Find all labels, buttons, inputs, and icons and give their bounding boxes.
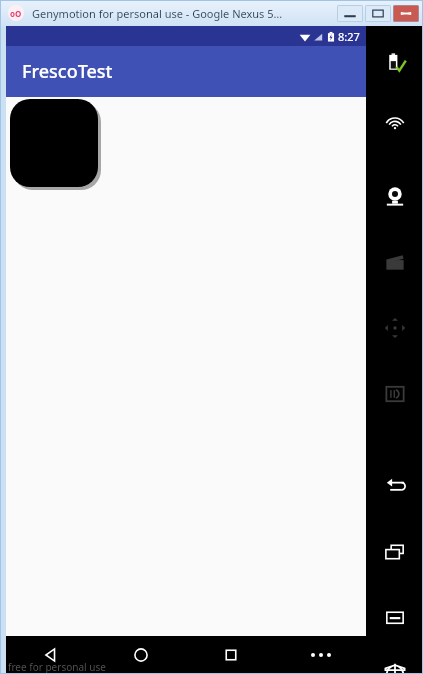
button[interactable]: Minimize: [337, 5, 363, 22]
button[interactable]: Identifiers: [373, 372, 417, 416]
button[interactable]: Home: [96, 636, 186, 674]
button[interactable]: Screen recorder: [373, 240, 417, 284]
button[interactable]: Home: [373, 662, 417, 674]
button[interactable]: Close: [393, 5, 419, 22]
button[interactable]: More options: [276, 636, 366, 674]
button[interactable]: GPS: [373, 108, 417, 152]
staticText: FrescoTest: [22, 59, 113, 84]
staticText: oO: [10, 8, 22, 19]
button[interactable]: Maximize: [365, 5, 391, 22]
staticText: Genymotion for personal use - Google Nex…: [32, 6, 283, 21]
button[interactable]: Accelerometer: [373, 306, 417, 350]
button[interactable]: Back: [373, 464, 417, 508]
staticText: free for personal use: [8, 660, 106, 674]
button[interactable]: Recent apps: [186, 636, 276, 674]
button[interactable]: Back: [6, 636, 96, 674]
button[interactable]: Battery: [373, 42, 417, 86]
button[interactable]: Image: [10, 99, 98, 187]
button[interactable]: Camera: [373, 174, 417, 218]
button[interactable]: Menu: [373, 596, 417, 640]
button[interactable]: Recent apps: [373, 530, 417, 574]
staticText: 8:27: [338, 29, 360, 44]
